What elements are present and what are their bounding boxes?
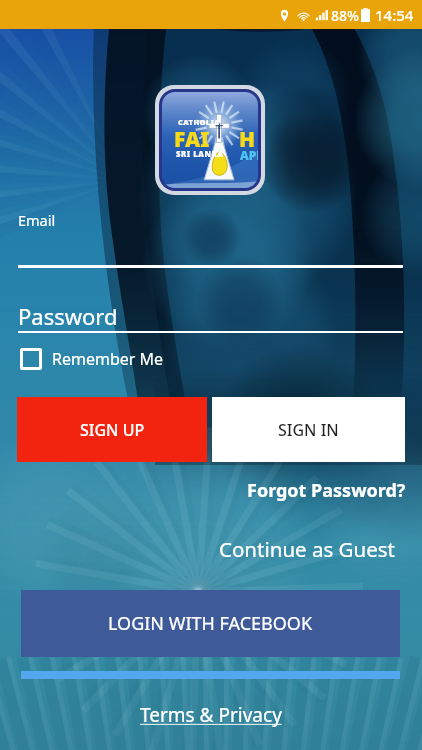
staticText: H	[239, 125, 256, 154]
button[interactable]: SIGN UP	[17, 397, 207, 462]
button[interactable]: Remember Me	[20, 348, 164, 370]
staticText: SIGN UP	[80, 419, 145, 441]
staticText: Terms & Privacy	[140, 702, 282, 728]
staticText: SRI LANKA	[176, 149, 224, 160]
button[interactable]: SIGN IN	[212, 397, 405, 462]
staticText: Forgot Password?	[247, 478, 406, 503]
staticText: LOGIN WITH FACEBOOK	[108, 611, 313, 636]
staticText: 88%	[331, 6, 359, 25]
button[interactable]: LOGIN WITH FACEBOOK	[21, 590, 400, 657]
staticText: Continue as Guest	[219, 535, 395, 563]
staticText: Password	[18, 301, 118, 331]
staticText: 14:54	[375, 5, 414, 25]
staticText: APP	[240, 147, 258, 163]
button[interactable]: Continue as Guest	[219, 535, 395, 563]
staticText: FAI	[174, 125, 210, 154]
staticText: SIGN IN	[278, 419, 339, 441]
button[interactable]: Terms & Privacy	[140, 702, 282, 728]
staticText: Email	[18, 210, 56, 230]
staticText: Remember Me	[52, 348, 164, 370]
staticText: CATHOLIC	[178, 117, 220, 127]
button[interactable]: Forgot Password?	[247, 478, 406, 503]
